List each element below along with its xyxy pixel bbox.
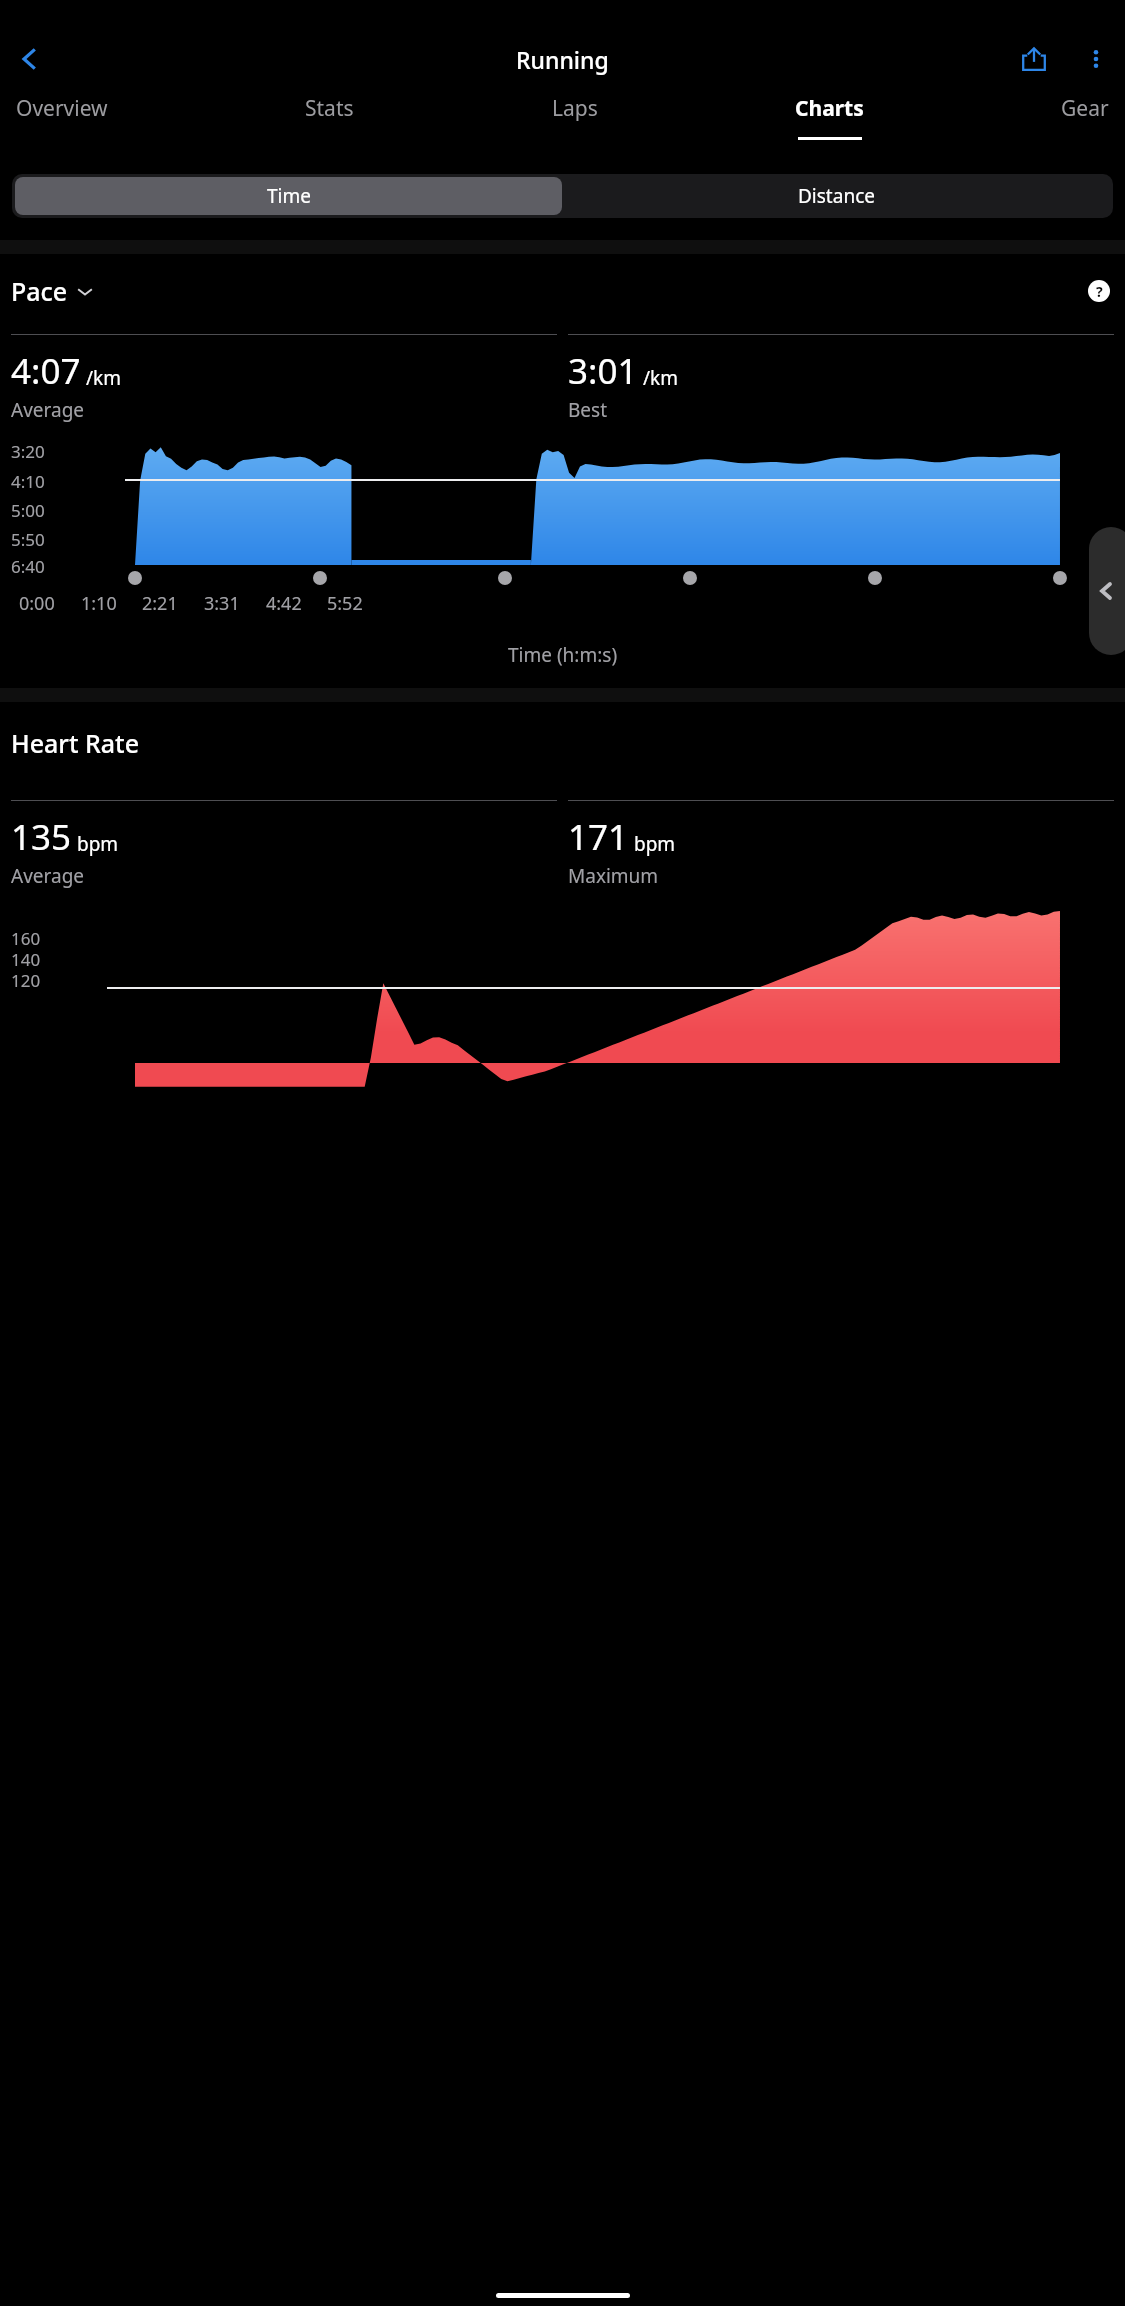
- staticText: 120: [11, 969, 41, 992]
- staticText: ?: [1096, 282, 1103, 301]
- staticText: 140: [11, 948, 41, 971]
- staticText: Distance: [798, 183, 875, 209]
- staticText: Average: [11, 863, 85, 889]
- button[interactable]: Gear: [1061, 78, 1109, 137]
- staticText: Stats: [305, 94, 354, 123]
- button[interactable]: Help: [1084, 276, 1114, 306]
- button[interactable]: Back: [4, 40, 56, 78]
- button[interactable]: Stats: [305, 78, 354, 137]
- button[interactable]: Charts: [795, 78, 864, 140]
- button[interactable]: Distance: [562, 177, 1110, 215]
- button[interactable]: Laps: [552, 78, 598, 137]
- button[interactable]: Overview: [16, 78, 108, 137]
- staticText: Overview: [16, 94, 108, 123]
- staticText: /km: [643, 365, 678, 391]
- staticText: Laps: [552, 94, 598, 123]
- staticText: 3:01: [568, 347, 638, 395]
- staticText: 4:10: [11, 470, 45, 493]
- staticText: bpm: [77, 831, 119, 857]
- staticText: 1:10: [81, 591, 1125, 616]
- button[interactable]: Share: [1009, 40, 1059, 78]
- staticText: Time (h:m:s): [508, 642, 618, 668]
- staticText: Running: [516, 44, 609, 75]
- button[interactable]: Open side panel: [1089, 527, 1125, 655]
- staticText: 3:31: [204, 591, 1125, 616]
- staticText: 4:07: [11, 347, 81, 395]
- staticText: 2:21: [142, 591, 1125, 616]
- staticText: Maximum: [568, 863, 659, 889]
- staticText: 171: [568, 813, 629, 861]
- button[interactable]: More options: [1071, 40, 1121, 78]
- button[interactable]: Time: [15, 177, 562, 215]
- staticText: /km: [86, 365, 121, 391]
- staticText: Charts: [795, 94, 864, 123]
- staticText: 5:00: [11, 499, 45, 522]
- staticText: 160: [11, 927, 41, 950]
- staticText: 0:00: [19, 591, 1125, 616]
- button[interactable]: Pace: [11, 274, 94, 308]
- staticText: 3:20: [11, 440, 45, 463]
- staticText: Pace: [11, 274, 68, 308]
- staticText: bpm: [634, 831, 676, 857]
- staticText: Time: [267, 183, 311, 209]
- staticText: 5:50: [11, 528, 45, 551]
- staticText: 5:52: [327, 591, 1125, 616]
- staticText: Heart Rate: [11, 726, 140, 760]
- staticText: Best: [568, 397, 608, 423]
- staticText: 4:42: [266, 591, 1125, 616]
- staticText: 6:40: [11, 555, 45, 578]
- staticText: Average: [11, 397, 85, 423]
- staticText: 135: [11, 813, 72, 861]
- staticText: Gear: [1061, 94, 1109, 123]
